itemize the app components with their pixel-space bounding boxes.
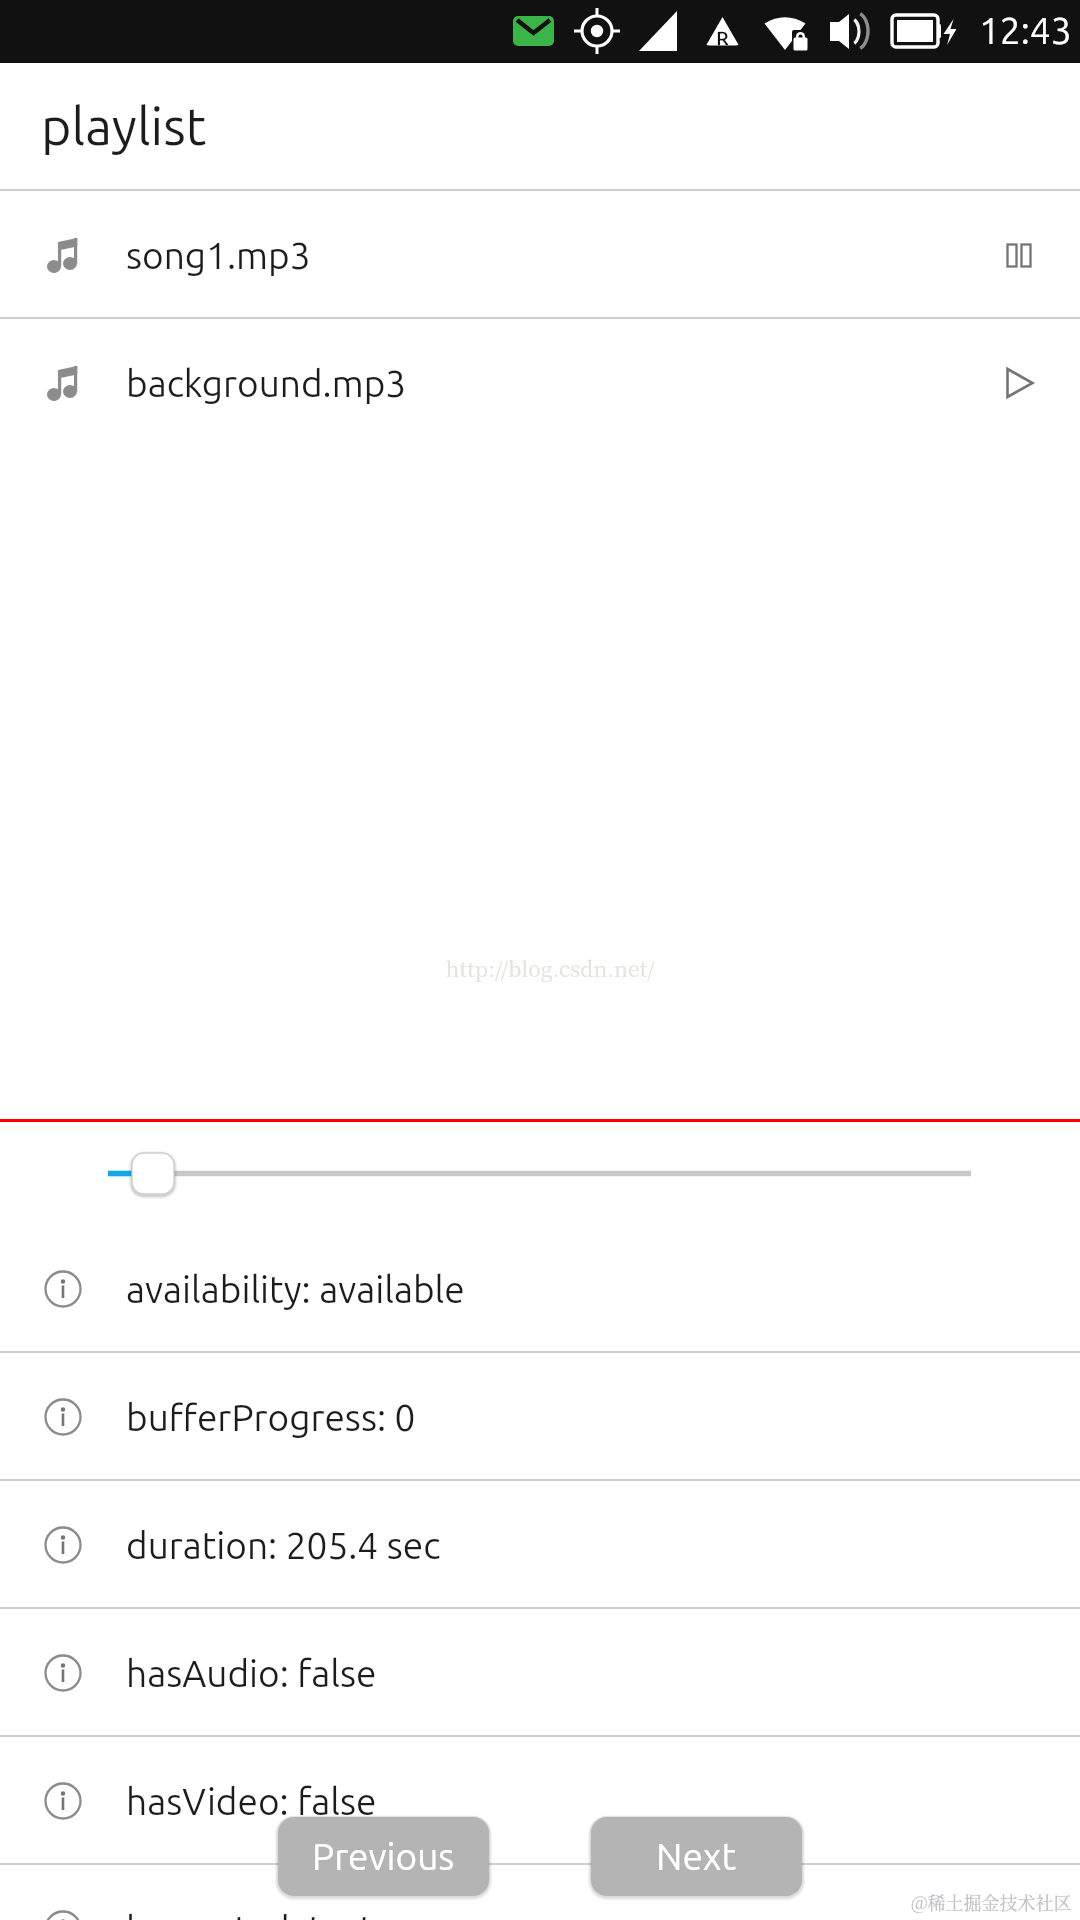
staticText: bufferProgress: 0 [126,1397,416,1438]
button[interactable]: Seek bar [0,1148,1080,1200]
staticText: R [707,27,738,48]
button[interactable]: availability: available [0,1225,1080,1353]
staticText: @稀土掘金技术社区 [911,1889,1072,1915]
staticText: song1.mp3 [126,235,311,276]
staticText: hasVideo: false [126,1781,377,1822]
button[interactable]: song1.mp3 [0,191,1080,319]
button[interactable]: hasVideo: false [0,1737,1080,1865]
staticText: Previous [312,1836,455,1877]
staticText: 12:43 [979,10,1072,51]
staticText: http://blog.csdn.net/ [10,953,1080,983]
button[interactable]: bufferProgress: 0 [0,1353,1080,1481]
button[interactable]: hasAudio: false [0,1609,1080,1737]
staticText: playlist [41,97,207,155]
staticText: duration: 205.4 sec [126,1525,441,1566]
button[interactable]: Next [591,1817,802,1896]
button[interactable]: hasmetadata: true [0,1865,1080,1920]
staticText: hasAudio: false [126,1653,377,1694]
button[interactable]: Play [991,355,1047,411]
button[interactable]: duration: 205.4 sec [0,1481,1080,1609]
button[interactable]: Pause [991,227,1047,283]
button[interactable]: Previous [278,1817,489,1896]
staticText: Next [656,1836,737,1877]
button[interactable]: background.mp3 [0,319,1080,447]
staticText: availability: available [126,1269,465,1310]
staticText: background.mp3 [126,363,407,404]
staticText: hasmetadata: true [126,1909,430,1920]
